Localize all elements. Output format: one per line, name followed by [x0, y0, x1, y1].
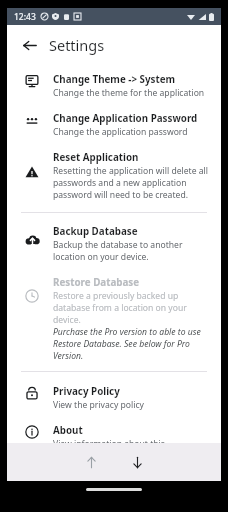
- button[interactable]: Change Theme -> System: [7, 73, 221, 99]
- button[interactable]: Privacy Policy: [7, 385, 221, 411]
- button[interactable]: Change Application Password: [7, 112, 221, 138]
- button[interactable]: Scroll down: [124, 449, 150, 475]
- staticText: Settings: [49, 35, 105, 55]
- staticText: View the privacy policy: [53, 399, 144, 411]
- staticText: Backup the database to another location …: [53, 239, 209, 263]
- staticText: Change Theme -> System: [53, 73, 176, 86]
- staticText: Change the theme for the application: [53, 87, 205, 99]
- button[interactable]: Reset Application: [7, 151, 221, 201]
- staticText: Resetting the application will delete al…: [53, 165, 209, 201]
- staticText: About: [53, 424, 83, 437]
- button[interactable]: Scroll up: [78, 449, 104, 475]
- button[interactable]: Backup Database: [7, 225, 221, 263]
- staticText: Purchase the Pro version to able to use …: [53, 326, 209, 362]
- button[interactable]: About: [7, 424, 221, 443]
- staticText: Change Application Password: [53, 112, 198, 125]
- staticText: View information about this application: [53, 438, 209, 443]
- staticText: Backup Database: [53, 225, 138, 238]
- button[interactable]: Back: [15, 31, 43, 59]
- staticText: Change the application password: [53, 126, 188, 138]
- staticText: Restore a previously backed up database …: [53, 290, 209, 326]
- button[interactable]: Restore Database: [7, 276, 221, 362]
- staticText: Restore Database: [53, 276, 140, 289]
- staticText: Reset Application: [53, 151, 139, 164]
- staticText: 12:43: [14, 11, 36, 23]
- staticText: Privacy Policy: [53, 385, 120, 398]
